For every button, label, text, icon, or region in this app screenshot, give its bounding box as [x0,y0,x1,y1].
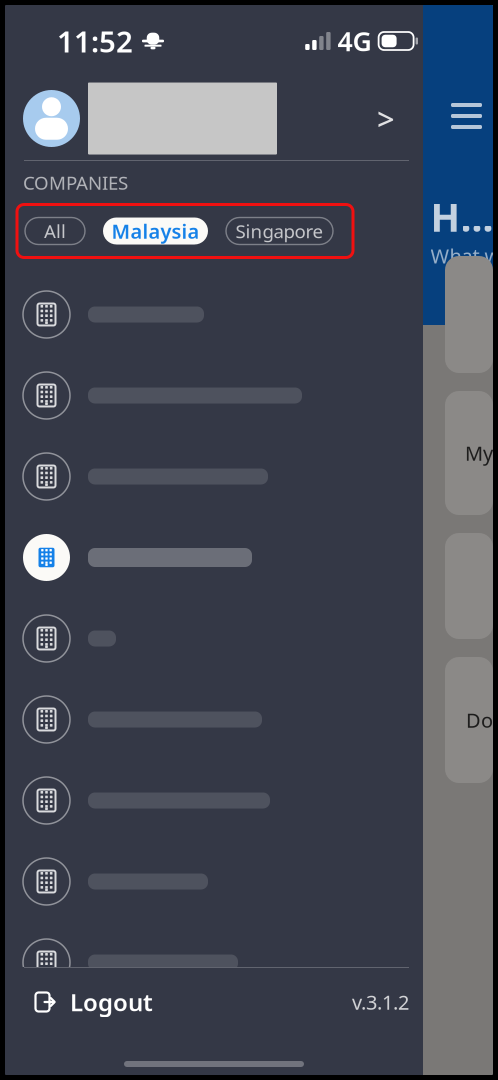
button[interactable] [5,355,423,436]
staticText: COMPANIES [23,170,128,195]
button[interactable] [5,679,423,760]
staticText: v.3.1.2 [352,989,409,1015]
button[interactable] [5,922,423,1003]
staticText: Singapore [235,219,323,243]
staticText: My [465,440,493,466]
button[interactable]: Logout [5,968,423,1036]
button[interactable]: > [5,77,423,160]
staticText: Malaysia [111,218,199,244]
button[interactable]: Singapore [226,217,333,244]
button[interactable]: Malaysia [103,217,208,244]
staticText: What w [430,242,498,269]
staticText: 4G [338,23,372,59]
button[interactable] [5,274,423,355]
button[interactable] [5,598,423,679]
staticText: Do [466,707,493,733]
staticText: Hello [430,191,498,242]
staticText: 11:52 [57,21,133,60]
button[interactable]: Menu [451,103,482,129]
staticText: > [377,98,395,139]
staticText: All [44,219,66,243]
button[interactable] [5,841,423,922]
button[interactable] [5,760,423,841]
staticText: Logout [70,986,153,1018]
button[interactable] [5,517,423,598]
button[interactable] [5,436,423,517]
button[interactable]: All [25,217,85,244]
